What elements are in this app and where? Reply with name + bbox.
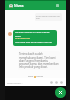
staticText: pesan: [36, 75, 44, 78]
staticText: Selamat datang di Nivea Official Store: [15, 31, 55, 37]
staticText: Ketik pesan...: [7, 81, 23, 84]
button[interactable]: Video call: [56, 4, 59, 7]
staticText: lihat detail produk ini kak: [36, 14, 61, 20]
staticText: Indonesia kak: [15, 37, 31, 40]
staticText: Nivea: [14, 3, 24, 8]
button[interactable]: Terima kasih sudah menghubungi kami. Tim…: [18, 51, 60, 70]
button[interactable]: lihat detail produk ini kak: [35, 13, 62, 21]
button[interactable]: Nivea: [5, 1, 66, 10]
button[interactable]: Attach: [50, 81, 53, 84]
button[interactable]: Selamat datang di Nivea Official Store: [13, 30, 57, 46]
button[interactable]: Attach: [60, 81, 63, 84]
staticText: Terima kasih sudah menghubungi kami. Tim…: [19, 52, 59, 69]
staticText: Ada yang bisa kami bantu hari ini?: [15, 41, 52, 44]
staticText: ketik: [28, 75, 34, 78]
button[interactable]: Send message: [55, 87, 66, 98]
button[interactable]: Attach: [55, 81, 58, 84]
